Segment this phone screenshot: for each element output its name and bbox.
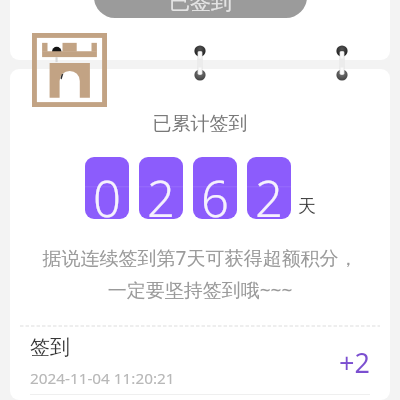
staticText: 已签到 (169, 0, 232, 15)
button[interactable]: 签到 (10, 335, 390, 389)
other: City gate badge (32, 33, 107, 107)
staticText: 已累计签到 (10, 112, 390, 136)
staticText: 2 (255, 165, 283, 219)
staticText: 据说连续签到第7天可获得超额积分， 一定要坚持签到哦~~~ (10, 245, 390, 302)
staticText: 2 (147, 165, 175, 219)
staticText: 2024-11-04 11:20:21 (30, 368, 175, 389)
staticText: 6 (201, 165, 229, 219)
button[interactable]: 已签到 (94, 0, 307, 18)
staticText: 0 (93, 165, 121, 219)
staticText: +2 (339, 344, 370, 381)
staticText: 天 (298, 195, 316, 218)
staticText: 签到 (30, 335, 70, 360)
